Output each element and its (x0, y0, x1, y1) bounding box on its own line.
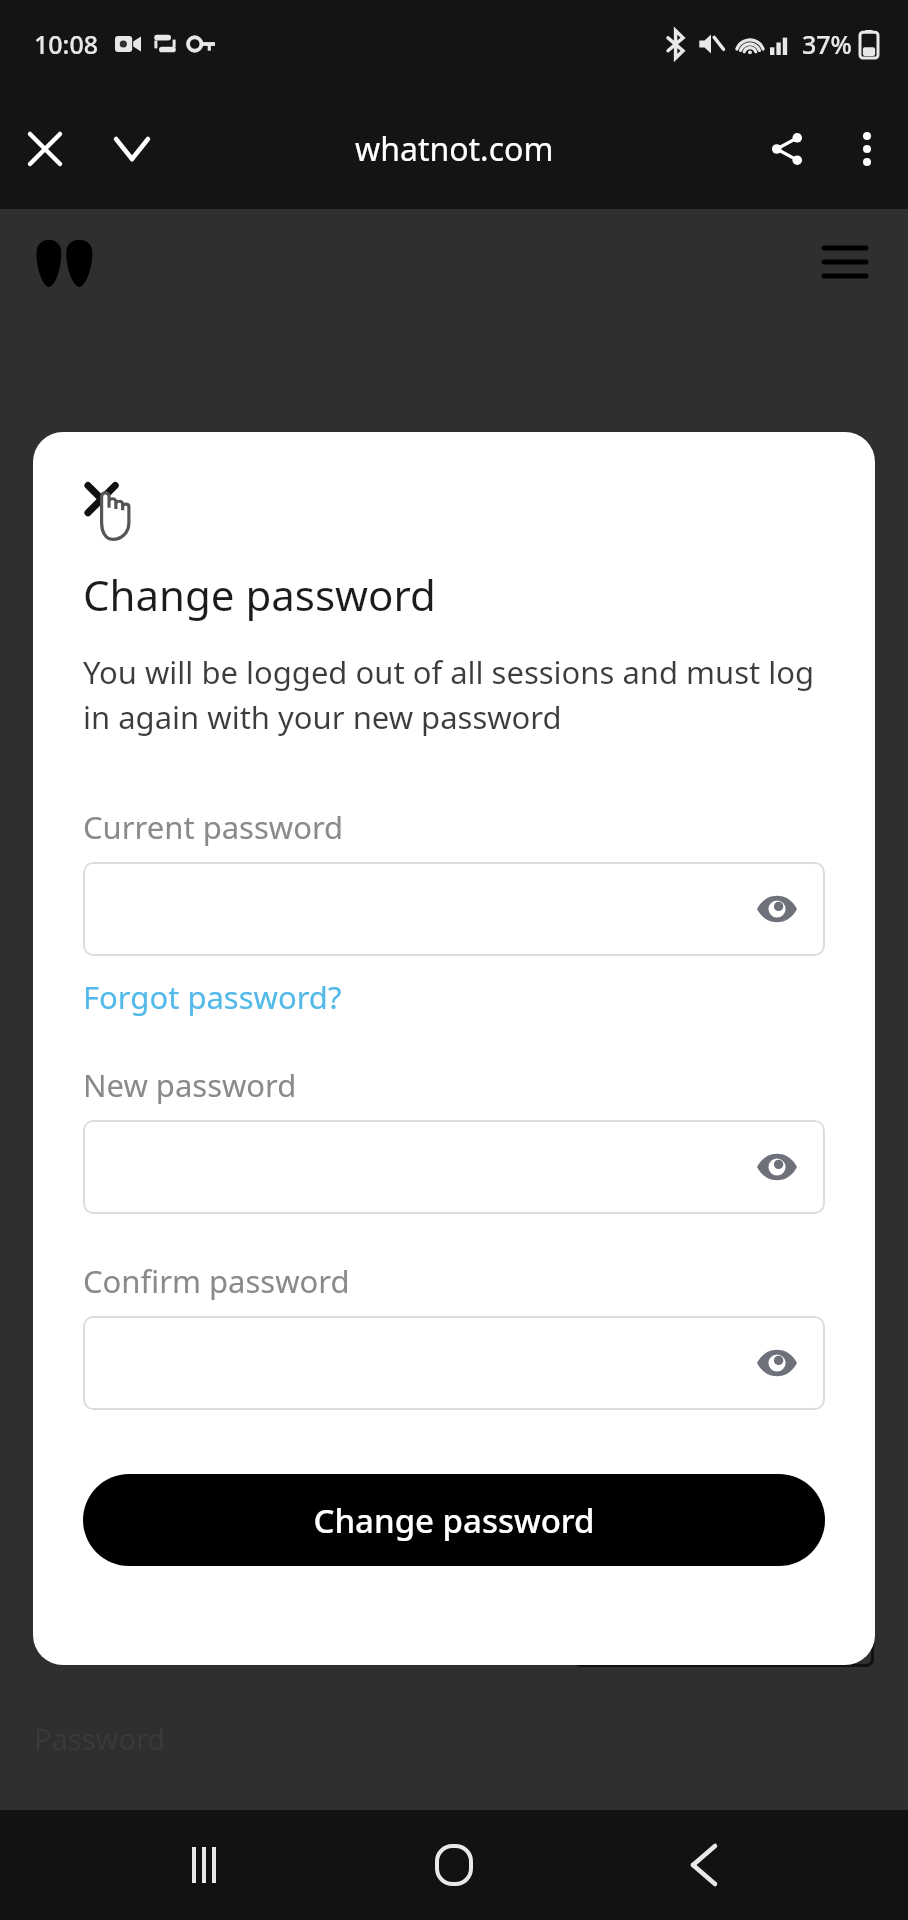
button[interactable]: Share (758, 120, 816, 178)
button[interactable]: Menu (816, 233, 874, 291)
staticText: Change password (83, 566, 436, 623)
staticText: Current password (83, 806, 344, 848)
button[interactable]: Change Your Email (573, 1596, 874, 1667)
button[interactable]: Show password (751, 1141, 803, 1193)
button[interactable]: Show password (751, 1337, 803, 1389)
staticText: New password (83, 1064, 297, 1106)
button[interactable]: Show password (83, 1316, 825, 1410)
staticText: 37% (802, 27, 852, 61)
button[interactable]: Forgot password? (83, 976, 342, 1018)
button[interactable]: Close dialog (83, 478, 145, 540)
button[interactable]: Change password (83, 1474, 825, 1566)
staticText: Forgot password? (83, 976, 342, 1018)
staticText: You will be logged out of all sessions a… (83, 651, 825, 738)
button[interactable]: Show password (83, 1120, 825, 1214)
button[interactable]: Show password (751, 883, 803, 935)
button[interactable]: Expand (103, 120, 161, 178)
button[interactable]: Recent apps (160, 1820, 250, 1910)
staticText: 6171dff3@moodjoy.com (34, 1612, 366, 1651)
staticText: Confirm password (83, 1260, 350, 1302)
staticText: whatnot.com (355, 127, 554, 171)
staticText: Password (34, 1719, 166, 1758)
button[interactable]: Home (409, 1820, 499, 1910)
staticText: 10:08 (34, 27, 99, 61)
button[interactable]: Close (16, 120, 74, 178)
staticText: Change password (313, 1498, 595, 1543)
button[interactable]: Back (659, 1820, 749, 1910)
button[interactable]: Show password (83, 862, 825, 956)
button[interactable]: More options (838, 120, 896, 178)
